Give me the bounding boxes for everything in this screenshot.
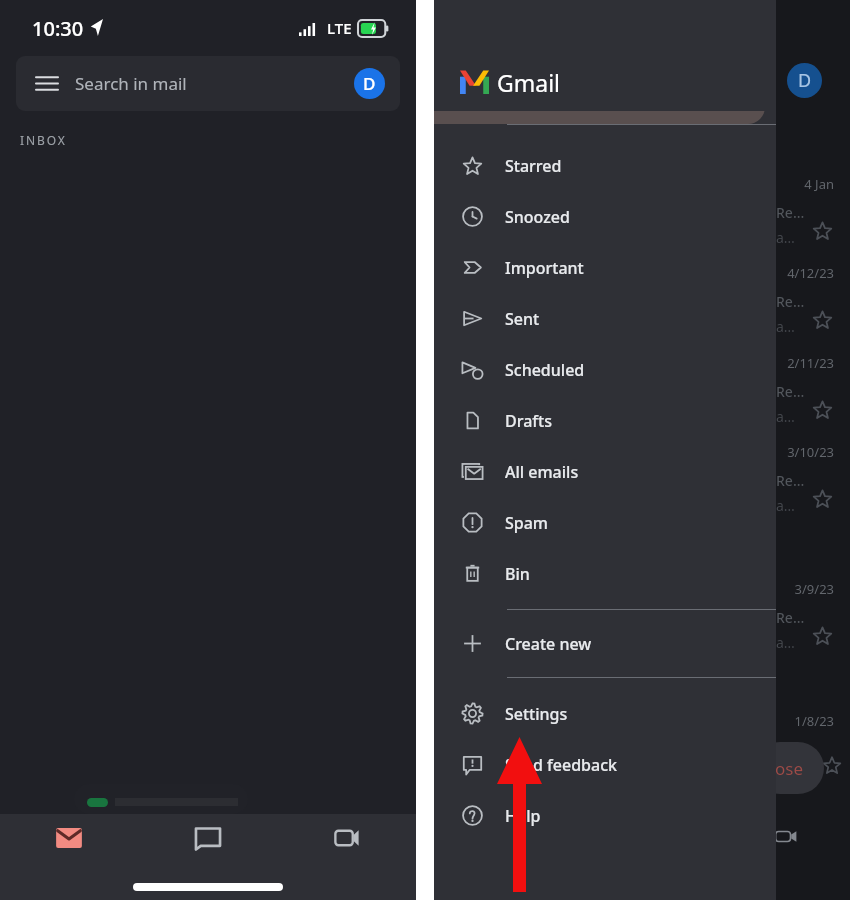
staticText: Re…: [776, 203, 805, 222]
button[interactable]: Chat: [179, 809, 237, 867]
staticText: Help: [505, 805, 541, 827]
button[interactable]: Send feedback: [434, 739, 776, 790]
staticText: Bin: [505, 563, 530, 585]
staticText: INBOX: [20, 132, 67, 148]
button[interactable]: Open navigation drawer: [16, 56, 400, 111]
staticText: a…: [776, 496, 795, 515]
staticText: Snoozed: [505, 206, 570, 228]
staticText: All emails: [505, 461, 579, 483]
staticText: a…: [776, 633, 795, 652]
button[interactable]: All emails: [434, 446, 776, 497]
button[interactable]: Help: [434, 790, 776, 841]
staticText: Send feedback: [505, 754, 617, 776]
staticText: a…: [776, 228, 795, 247]
staticText: Re…: [776, 608, 805, 627]
staticText: LTE: [327, 18, 352, 38]
button[interactable]: Create new: [434, 618, 776, 669]
staticText: Sent: [505, 308, 540, 330]
staticText: Re…: [776, 471, 805, 490]
staticText: 3/10/23: [787, 443, 834, 461]
staticText: 4/12/23: [787, 264, 834, 282]
staticText: Gmail: [497, 67, 561, 98]
staticText: ose: [775, 757, 804, 780]
button[interactable]: Spam: [434, 497, 776, 548]
staticText: a…: [776, 765, 795, 784]
staticText: Re…: [776, 292, 805, 311]
button[interactable]: Starred: [434, 140, 776, 191]
button[interactable]: Open navigation drawer: [25, 56, 67, 111]
button[interactable]: Sent: [434, 293, 776, 344]
staticText: Search in mail: [75, 72, 187, 95]
staticText: Re…: [776, 740, 805, 759]
staticText: 2/11/23: [787, 354, 834, 372]
button[interactable]: Snoozed: [434, 191, 776, 242]
staticText: Drafts: [505, 410, 552, 432]
button[interactable]: Bin: [434, 548, 776, 599]
staticText: D: [363, 72, 376, 95]
staticText: Create new: [505, 633, 592, 655]
staticText: 10:30: [32, 15, 84, 42]
staticText: 1/8/23: [794, 712, 834, 730]
staticText: 4 Jan: [804, 175, 834, 193]
button[interactable]: ose: [754, 742, 824, 794]
staticText: Important: [505, 257, 584, 279]
staticText: 3/9/23: [794, 580, 834, 598]
staticText: a…: [776, 407, 795, 426]
button[interactable]: Scheduled: [434, 344, 776, 395]
button[interactable]: Mail: [40, 809, 98, 867]
staticText: a…: [776, 317, 795, 336]
button[interactable]: Important: [434, 242, 776, 293]
button[interactable]: Account: [354, 68, 385, 99]
staticText: Starred: [505, 155, 562, 177]
staticText: Scheduled: [505, 359, 585, 381]
staticText: Re…: [776, 382, 805, 401]
staticText: Settings: [505, 703, 568, 725]
button[interactable]: Meet: [318, 809, 376, 867]
staticText: Spam: [505, 512, 549, 534]
button[interactable]: Drafts: [434, 395, 776, 446]
staticText: D: [798, 68, 812, 93]
button[interactable]: Settings: [434, 688, 776, 739]
